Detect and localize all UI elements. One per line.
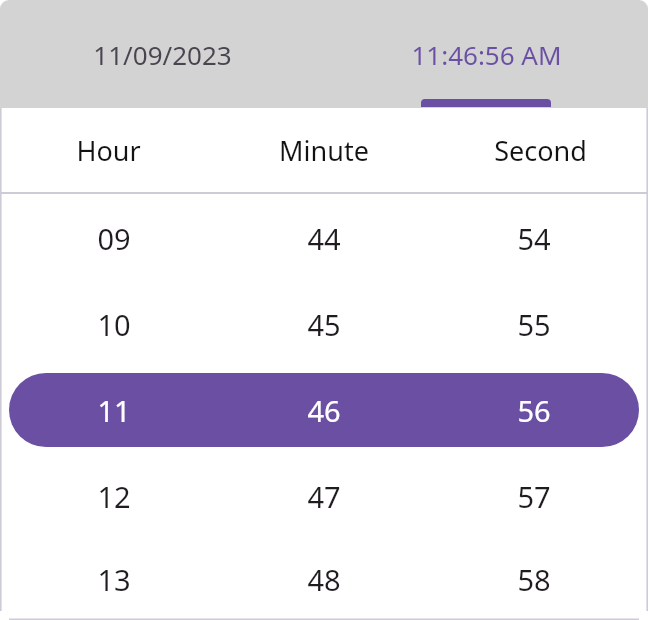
staticText: 54 xyxy=(517,219,551,258)
staticText: 47 xyxy=(307,477,341,516)
staticText: 48 xyxy=(307,560,341,599)
button[interactable]: 13 xyxy=(9,545,639,614)
staticText: 09 xyxy=(97,219,131,258)
button[interactable]: 10 xyxy=(9,287,639,361)
staticText: 11:46:56 AM xyxy=(411,37,562,72)
button[interactable]: 11:46:56 AM xyxy=(324,0,648,108)
staticText: Hour xyxy=(76,132,141,169)
button[interactable]: Hour xyxy=(0,108,216,192)
staticText: 58 xyxy=(517,560,551,599)
button[interactable]: 12 xyxy=(9,459,639,533)
button[interactable]: 11/09/2023 xyxy=(0,0,324,108)
staticText: 13 xyxy=(97,560,131,599)
staticText: 12 xyxy=(97,477,131,516)
staticText: 10 xyxy=(97,305,131,344)
staticText: 55 xyxy=(517,305,551,344)
staticText: 11 xyxy=(97,391,131,430)
staticText: 11/09/2023 xyxy=(93,37,232,72)
button[interactable]: Second xyxy=(432,108,648,192)
staticText: Second xyxy=(494,132,587,169)
button[interactable]: Minute xyxy=(216,108,432,192)
staticText: Minute xyxy=(279,132,369,169)
staticText: 57 xyxy=(517,477,551,516)
staticText: 44 xyxy=(307,219,341,258)
button[interactable]: 09 xyxy=(9,201,639,275)
staticText: 56 xyxy=(517,391,551,430)
staticText: 45 xyxy=(307,305,341,344)
button[interactable]: 11 xyxy=(9,373,639,447)
staticText: 46 xyxy=(307,391,341,430)
